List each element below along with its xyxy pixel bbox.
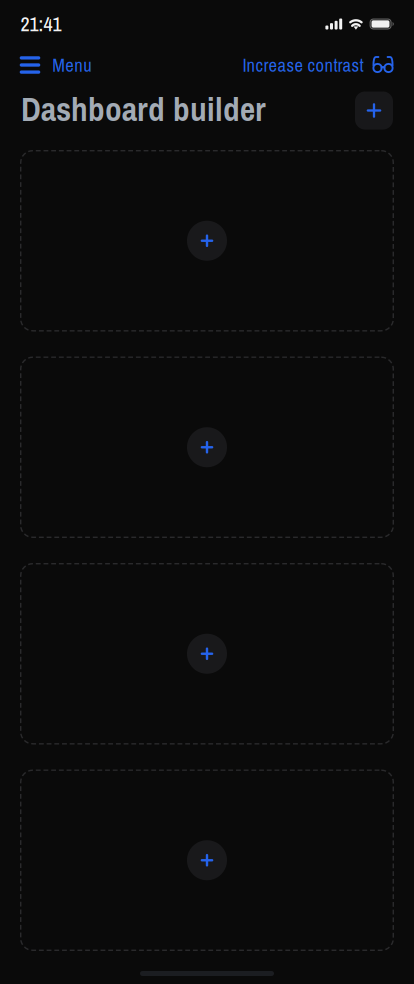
staticText: Dashboard builder <box>21 87 266 131</box>
button[interactable]: Add <box>355 90 393 128</box>
button[interactable]: Menu <box>20 50 92 80</box>
staticText: 21:41 <box>20 10 61 37</box>
staticText: Increase contrast <box>242 52 363 77</box>
button[interactable]: Add widget <box>187 840 227 880</box>
button[interactable]: Add widget <box>187 221 227 261</box>
button[interactable]: Increase contrast <box>242 50 393 80</box>
button[interactable]: Add widget <box>187 634 227 674</box>
staticText: Menu <box>52 52 92 77</box>
button[interactable]: Add widget <box>187 427 227 467</box>
